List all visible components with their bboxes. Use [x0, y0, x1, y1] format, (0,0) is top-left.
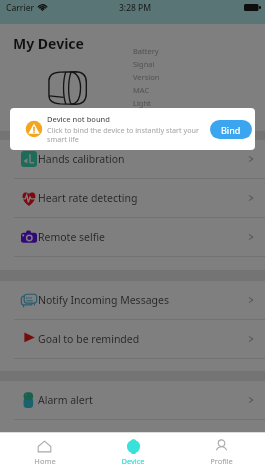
staticText: Version	[133, 72, 160, 85]
staticText: 3:28 PM	[119, 2, 152, 14]
button[interactable]: Notify Incoming Messages	[0, 281, 265, 319]
staticText: Profile	[210, 456, 233, 466]
button[interactable]: Remote selfie	[0, 218, 265, 256]
button[interactable]: Goal to be reminded	[0, 320, 265, 358]
staticText: Device	[121, 456, 145, 466]
button[interactable]: Bind	[210, 120, 252, 139]
staticText: Carrier	[6, 2, 35, 14]
staticText: My Device	[13, 34, 84, 53]
staticText: Home	[34, 456, 56, 466]
staticText: Bind	[221, 124, 241, 136]
button[interactable]: Home	[0, 435, 89, 470]
staticText: Click to bind the device to instantly st…	[47, 125, 206, 144]
button[interactable]: Profile	[177, 435, 265, 470]
staticText: Heart rate detecting	[38, 191, 138, 205]
staticText: MAC	[133, 85, 150, 98]
staticText: Remote selfie	[38, 230, 105, 244]
staticText: Goal to be reminded	[38, 332, 140, 346]
staticText: Battery	[133, 46, 159, 59]
staticText: Notify Incoming Messages	[38, 293, 169, 307]
button[interactable]: Alarm alert	[0, 381, 265, 419]
staticText: Device not bound	[47, 114, 110, 124]
button[interactable]: Heart rate detecting	[0, 179, 265, 217]
button[interactable]: Hands calibration	[0, 140, 265, 178]
staticText: Hands calibration	[38, 152, 125, 166]
staticText: Signal	[133, 59, 155, 72]
button[interactable]: Device	[89, 435, 177, 470]
staticText: Alarm alert	[38, 393, 93, 407]
staticText: Light	[133, 98, 151, 111]
button[interactable]: Device not bound	[10, 108, 255, 150]
